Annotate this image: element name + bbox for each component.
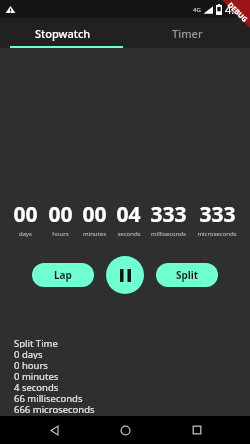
- staticText: Timer: [172, 26, 203, 41]
- button[interactable]: Timer: [125, 18, 250, 48]
- staticText: 04: [116, 200, 141, 229]
- staticText: 666 microseconds: [14, 403, 95, 414]
- staticText: 0 days: [14, 348, 43, 359]
- staticText: minutes: [83, 230, 106, 238]
- staticText: seconds: [117, 230, 141, 238]
- staticText: 0 hours: [14, 359, 48, 370]
- staticText: 00: [48, 200, 73, 229]
- staticText: 333: [199, 200, 236, 229]
- staticText: 00: [13, 200, 38, 229]
- staticText: milliseconds: [151, 230, 186, 238]
- button[interactable]: Pause: [106, 256, 144, 294]
- staticText: days: [19, 230, 32, 238]
- staticText: 333: [150, 200, 187, 229]
- staticText: 4G: [193, 6, 201, 14]
- staticText: 4 seconds: [14, 381, 59, 392]
- staticText: 0 minutes: [14, 370, 59, 381]
- button[interactable]: Stopwatch: [0, 18, 125, 48]
- staticText: 4:13: [225, 2, 247, 17]
- staticText: Split Time: [14, 337, 58, 348]
- button[interactable]: Lap: [32, 263, 94, 287]
- button[interactable]: Recent apps: [179, 416, 215, 444]
- button[interactable]: Home: [107, 416, 143, 444]
- staticText: 00: [82, 200, 107, 229]
- staticText: Lap: [54, 268, 72, 282]
- staticText: Split: [176, 268, 199, 282]
- staticText: hours: [52, 230, 69, 238]
- staticText: microseconds: [197, 230, 237, 238]
- staticText: Stopwatch: [35, 26, 91, 41]
- button[interactable]: Split: [156, 263, 218, 287]
- staticText: DEBUG: [225, 1, 250, 25]
- button[interactable]: Back: [36, 416, 72, 444]
- staticText: 66 milliseconds: [14, 392, 83, 403]
